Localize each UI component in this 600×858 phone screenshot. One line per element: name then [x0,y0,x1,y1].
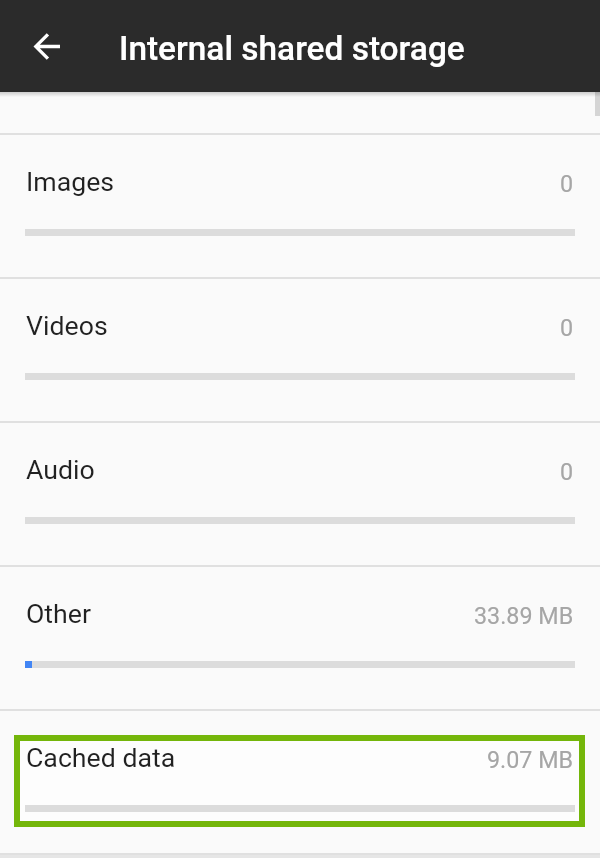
button[interactable]: Other [0,567,600,709]
staticText: Other [26,598,91,629]
button[interactable]: Audio [0,423,600,565]
button[interactable] [22,22,70,70]
staticText: Internal shared storage [119,29,465,68]
button[interactable]: Images [0,135,600,277]
staticText: 9.07 MB [487,746,574,773]
staticText: Videos [26,310,108,341]
staticText: 0 [560,458,574,485]
staticText: Audio [26,454,95,485]
button[interactable]: Videos [0,279,600,421]
staticText: 33.89 MB [474,602,574,629]
button[interactable]: Cached data [0,711,600,853]
staticText: Cached data [26,742,176,773]
staticText: 0 [560,314,574,341]
staticText: 0 [560,170,574,197]
staticText: Images [26,166,115,197]
